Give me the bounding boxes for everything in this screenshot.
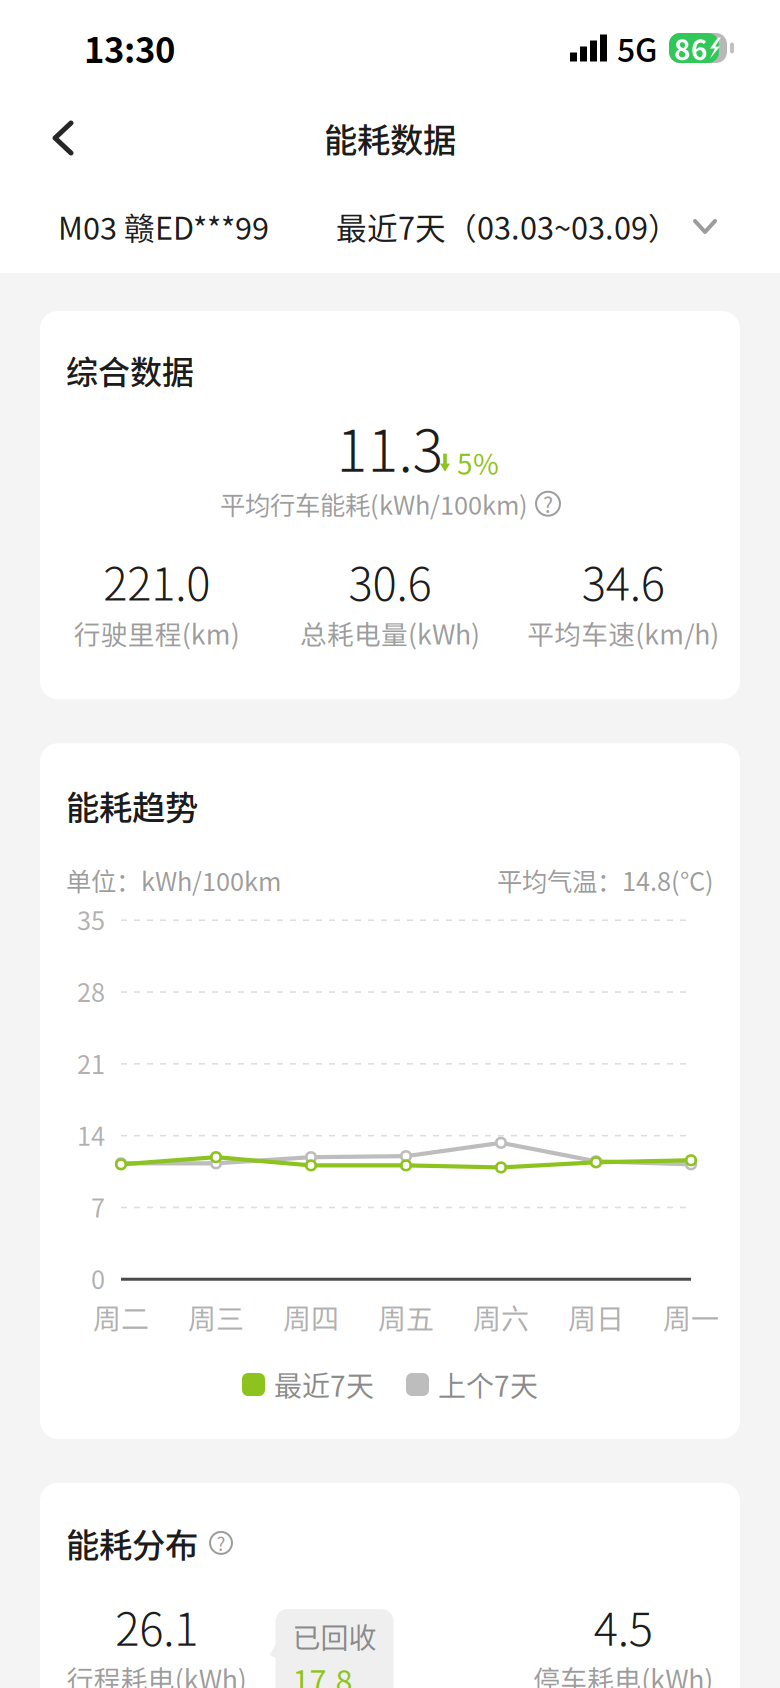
staticText: 周一 (663, 1297, 719, 1337)
staticText: 平均气温：14.8(°C) (497, 862, 714, 898)
staticText: 21 (77, 1044, 105, 1081)
staticText: 总耗电量(kWh) (300, 614, 480, 652)
staticText: 34.6 (582, 548, 665, 614)
staticText: 30.6 (348, 548, 431, 614)
staticText: 行程耗电(kWh) (67, 1659, 247, 1688)
staticText: 平均车速(km/h) (527, 614, 719, 652)
staticText: 17.8kWh (292, 1657, 355, 1688)
staticText: 已回收 (292, 1616, 376, 1656)
staticText: 周日 (568, 1297, 624, 1337)
staticText: 最近7天 (274, 1364, 374, 1405)
staticText: 综合数据 (66, 347, 194, 393)
staticText: 86 (674, 28, 708, 68)
staticText: 周三 (188, 1297, 244, 1337)
staticText: 行驶里程(km) (74, 614, 240, 652)
staticText: 能耗分布 (66, 1519, 198, 1567)
staticText: 5G (617, 25, 657, 71)
button[interactable]: 最近7天（03.03~03.09） (336, 204, 717, 249)
staticText: 221.0 (103, 548, 210, 614)
staticText: 4.5 (594, 1593, 653, 1659)
staticText: 7 (91, 1188, 105, 1225)
staticText: 单位：kWh/100km (66, 862, 281, 898)
staticText: 周二 (93, 1297, 149, 1337)
staticText: 0 (91, 1260, 105, 1297)
staticText: 周五 (378, 1297, 434, 1337)
staticText: 能耗数据 (324, 114, 456, 162)
staticText: 28 (77, 973, 105, 1009)
staticText: 13:30 (84, 23, 175, 73)
staticText: 5% (457, 442, 499, 483)
staticText: 最近7天（03.03~03.09） (336, 204, 679, 249)
staticText: 35 (77, 901, 105, 938)
staticText: 能耗趋势 (66, 781, 198, 830)
staticText: 11.3 (336, 405, 443, 488)
staticText: M03 赣ED***99 (58, 204, 269, 249)
staticText: ? (216, 1529, 225, 1556)
button[interactable]: Back (0, 104, 105, 172)
staticText: 周四 (283, 1297, 339, 1337)
staticText: 14 (77, 1116, 105, 1153)
staticText: 26.1 (115, 1593, 198, 1659)
staticText: 上个7天 (438, 1364, 538, 1405)
staticText: 停车耗电(kWh) (533, 1659, 713, 1688)
staticText: 周六 (473, 1297, 529, 1337)
staticText: 平均行车能耗(kWh/100km) (220, 485, 528, 522)
staticText: ? (543, 488, 553, 519)
